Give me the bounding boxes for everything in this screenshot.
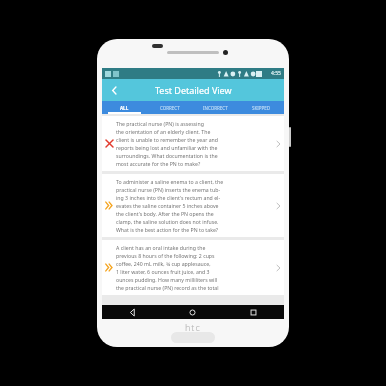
staticText: 1 liter water, 6 ounces fruit juice, and… [116, 268, 210, 275]
staticText: CORRECT [160, 105, 180, 111]
button[interactable]: Home [162, 305, 223, 319]
staticText: reports being lost and unfamiliar with t… [116, 144, 218, 151]
button[interactable]: A client has an oral intake during the [102, 240, 284, 295]
button[interactable]: Back [105, 81, 123, 99]
staticText: INCORRECT [203, 105, 228, 111]
staticText: clamp, the saline solution does not infu… [116, 218, 219, 225]
staticText: The practical nurse (PN) is assessing [116, 120, 204, 127]
button[interactable]: CORRECT [147, 101, 192, 114]
staticText: the practical nurse (PN) record as the t… [116, 284, 219, 291]
staticText: the orientation of an elderly client. Th… [116, 128, 211, 135]
staticText: ALL [120, 105, 129, 111]
staticText: client is unable to remember the year an… [116, 136, 219, 143]
staticText: previous 8 hours of the following: 2 cup… [116, 252, 215, 259]
staticText: ing 3 inches into the client's rectum an… [116, 194, 221, 201]
staticText: SKIPPED [252, 105, 271, 111]
button[interactable]: INCORRECT [192, 101, 238, 114]
staticText: htc [185, 321, 201, 333]
button[interactable]: ALL [102, 101, 147, 114]
staticText: Test Detailed View [155, 84, 232, 96]
staticText: most accurate for the PN to make? [116, 160, 201, 167]
staticText: To administer a saline enema to a client… [116, 178, 224, 185]
staticText: What is the best action for the PN to ta… [116, 226, 219, 233]
staticText: practical nurse (PN) inserts the enema t… [116, 186, 221, 193]
staticText: A client has an oral intake during the [116, 244, 206, 251]
staticText: evates the saline container 5 inches abo… [116, 202, 219, 209]
staticText: 4:55 [271, 70, 281, 77]
button[interactable]: Recents [223, 305, 284, 319]
button[interactable]: SKIPPED [238, 101, 284, 114]
button[interactable]: The practical nurse (PN) is assessing [102, 116, 284, 171]
button[interactable]: Back [102, 305, 162, 319]
staticText: ounces pudding. How many milliliters wil… [116, 276, 218, 283]
button[interactable]: To administer a saline enema to a client… [102, 174, 284, 237]
staticText: the client's body. After the PN opens th… [116, 210, 214, 217]
staticText: surroundings. What documentation is the [116, 152, 218, 159]
staticText: coffee, 240 mL milk, ¾ cup applesauce, [116, 260, 211, 267]
